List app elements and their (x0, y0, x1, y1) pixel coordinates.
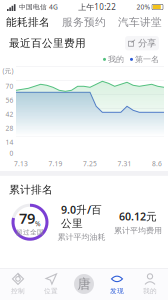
button[interactable]: 汽车讲堂 (112, 14, 168, 34)
staticText: 20% (136, 3, 150, 11)
button[interactable]: 我的 (133, 269, 166, 299)
staticText: 0 (9, 149, 13, 158)
staticText: 4G (49, 3, 58, 11)
staticText: (元) (2, 66, 13, 75)
staticText: 7.31 (117, 159, 131, 168)
staticText: 能耗排名 (6, 16, 50, 29)
button[interactable]: 车辆 (67, 269, 100, 299)
staticText: 42 (5, 110, 13, 119)
staticText: 中国电信 (19, 3, 47, 11)
staticText: 70 (5, 82, 13, 91)
staticText: 累计排名 (9, 183, 53, 196)
staticText: 累计平均费用 (114, 226, 162, 235)
staticText: 唐 (77, 276, 90, 292)
button[interactable]: 控制 (1, 269, 34, 299)
staticText: 第一名 (135, 54, 159, 64)
staticText: 8.6 (152, 159, 162, 168)
button[interactable]: 分享 (125, 36, 159, 50)
button[interactable]: 服务预约 (56, 14, 112, 34)
staticText: 我的 (143, 287, 157, 295)
staticText: 超过全国 (16, 228, 44, 236)
button[interactable]: 发现 (100, 269, 133, 299)
button[interactable]: 能耗排名 (0, 14, 56, 34)
staticText: 分享 (138, 37, 156, 49)
staticText: 79 (19, 208, 35, 228)
staticText: 累计平均油耗 (57, 232, 105, 242)
staticText: 14 (5, 138, 13, 147)
staticText: 56 (5, 96, 13, 105)
staticText: 控制 (11, 287, 25, 295)
staticText: 汽车讲堂 (118, 16, 162, 29)
staticText: 28 (5, 124, 13, 133)
staticText: 服务预约 (62, 16, 106, 29)
staticText: 7.25 (83, 159, 97, 168)
staticText: 位置 (44, 287, 58, 295)
staticText: 60.12元 (119, 209, 157, 223)
button[interactable]: 位置 (34, 269, 67, 299)
staticText: 我的 (108, 54, 124, 64)
staticText: 上午10:22 (78, 2, 116, 12)
staticText: 最近百公里费用 (9, 36, 86, 50)
staticText: % (35, 219, 41, 228)
staticText: 发现 (110, 287, 124, 295)
staticText: 9.0升/百公里 (61, 202, 102, 230)
staticText: 7.13 (14, 159, 28, 168)
staticText: 7.19 (48, 159, 62, 168)
